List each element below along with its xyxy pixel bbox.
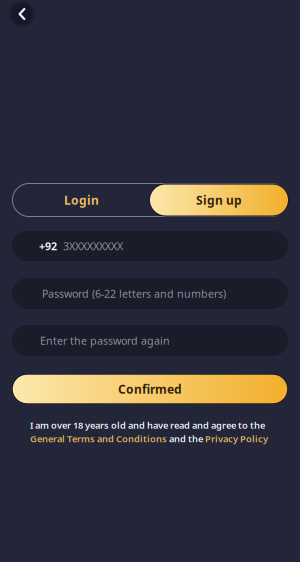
staticText: I am over 18 years old and have read and… [30, 419, 265, 431]
staticText: +92 [39, 239, 57, 253]
button[interactable]: Privacy Policy [205, 432, 268, 445]
button[interactable]: Confirmed [12, 374, 288, 404]
staticText: and the [167, 432, 205, 445]
staticText: Privacy Policy [205, 432, 268, 445]
staticText: Sign up [196, 192, 242, 208]
staticText: General Terms and Conditions [30, 432, 167, 445]
staticText: Password (6-22 letters and numbers) [42, 286, 226, 301]
button[interactable]: Login [13, 183, 150, 217]
staticText: 3XXXXXXXXX [63, 239, 123, 253]
staticText: Confirmed [118, 381, 182, 397]
staticText: Login [64, 192, 99, 208]
button[interactable]: Sign up [150, 184, 288, 216]
staticText: Enter the password again [40, 333, 170, 348]
button[interactable]: Back [8, 0, 36, 28]
button[interactable]: General Terms and Conditions [30, 432, 167, 445]
